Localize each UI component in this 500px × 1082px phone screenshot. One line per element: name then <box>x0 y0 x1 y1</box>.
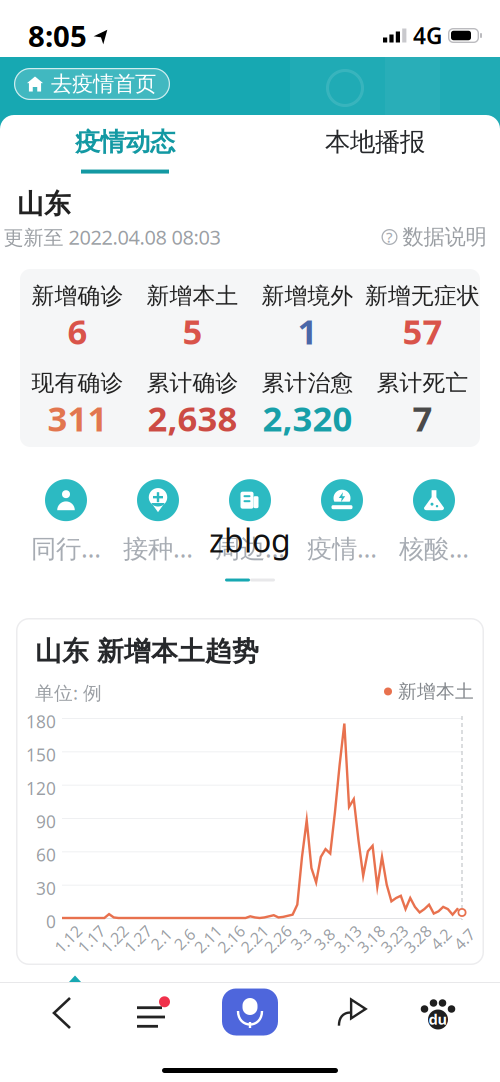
staticText: 4.2 <box>430 928 452 950</box>
staticText: 新增确诊 <box>31 282 123 310</box>
staticText: 1.17 <box>76 928 107 950</box>
staticText: 90 <box>36 810 56 833</box>
staticText: 8:05 <box>28 16 87 55</box>
staticText: 本地播报 <box>325 126 425 157</box>
staticText: 去疫情首页 <box>51 71 156 97</box>
staticText: 更新至 2022.04.08 08:03 <box>3 224 220 250</box>
staticText: 3.18 <box>355 928 386 950</box>
staticText: 150 <box>26 743 56 766</box>
staticText: 2.26 <box>262 928 293 950</box>
staticText: 180 <box>26 710 56 733</box>
staticText: 同行… <box>31 531 101 565</box>
staticText: 现有确诊 <box>31 369 123 397</box>
button[interactable]: Menu <box>126 990 176 1036</box>
staticText: 累计死亡 <box>376 369 468 397</box>
staticText: ? <box>386 227 393 247</box>
staticText: 5 <box>182 308 202 354</box>
button[interactable]: 本地播报 <box>325 126 425 173</box>
button[interactable]: 疫情动态 <box>75 126 175 173</box>
button[interactable]: Back <box>40 984 84 1042</box>
staticText: 新增境外 <box>261 282 353 310</box>
staticText: 2,638 <box>147 395 237 441</box>
staticText: 0 <box>46 910 56 933</box>
staticText: 4.7 <box>453 928 475 950</box>
staticText: 1.27 <box>122 928 153 950</box>
staticText: 120 <box>26 777 56 800</box>
button[interactable]: 周边… <box>215 479 285 565</box>
staticText: 3.8 <box>313 928 335 950</box>
staticText: 累计确诊 <box>146 369 238 397</box>
staticText: du <box>428 1009 447 1029</box>
button[interactable]: ? <box>381 224 486 250</box>
button[interactable]: Baidu <box>412 988 464 1037</box>
staticText: 1.22 <box>99 928 130 950</box>
staticText: 3.23 <box>379 928 410 950</box>
button[interactable]: 核酸… <box>399 479 469 565</box>
staticText: 3.28 <box>402 928 433 950</box>
button[interactable]: 去疫情首页 <box>14 68 170 100</box>
button[interactable]: Voice search <box>222 988 278 1035</box>
staticText: 1 <box>297 308 317 354</box>
staticText: 接种… <box>123 531 193 565</box>
button[interactable]: Share <box>327 989 376 1036</box>
staticText: 2.16 <box>216 928 247 950</box>
button[interactable]: 疫情… <box>307 479 377 565</box>
staticText: 单位: 例 <box>35 680 102 705</box>
staticText: 周边… <box>215 531 285 565</box>
staticText: 新增本土 <box>146 282 238 310</box>
staticText: zblog <box>209 519 291 561</box>
staticText: 新增无症状 <box>365 282 480 310</box>
staticText: 7 <box>412 395 432 441</box>
staticText: 2.6 <box>173 928 195 950</box>
staticText: 57 <box>402 308 442 354</box>
staticText: 山东 <box>17 188 71 220</box>
staticText: 60 <box>36 843 56 866</box>
staticText: 山东 新增本土趋势 <box>35 635 259 668</box>
staticText: 数据说明 <box>402 224 486 250</box>
staticText: 2.11 <box>192 928 223 950</box>
staticText: 2.1 <box>150 928 172 950</box>
staticText: 2.21 <box>239 928 270 950</box>
staticText: 6 <box>67 308 87 354</box>
staticText: 新增本土 <box>398 680 474 703</box>
staticText: 3.13 <box>332 928 363 950</box>
button[interactable]: 同行… <box>31 479 101 565</box>
staticText: 1.12 <box>52 928 83 950</box>
staticText: 疫情动态 <box>75 126 175 157</box>
staticText: 3.3 <box>290 928 312 950</box>
staticText: 4G <box>413 20 442 50</box>
staticText: 311 <box>47 395 107 441</box>
staticText: 累计治愈 <box>261 369 353 397</box>
staticText: 核酸… <box>399 531 469 565</box>
staticText: 30 <box>36 877 56 900</box>
button[interactable]: 接种… <box>123 479 193 565</box>
staticText: 疫情… <box>307 531 377 565</box>
staticText: 2,320 <box>262 395 352 441</box>
